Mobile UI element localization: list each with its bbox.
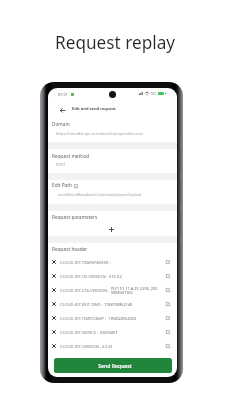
staticText: Request replay: [55, 31, 176, 54]
staticText: 55059457: [100, 330, 118, 335]
staticText: CLOUD-KIT-OS-VERSION :: [60, 274, 108, 279]
button[interactable]: CLOUD-KIT-NONCE :: [48, 325, 177, 339]
staticText: Edit and send request: [72, 106, 116, 112]
staticText: V15.0.2: [109, 274, 123, 279]
staticText: Request method: [52, 153, 89, 159]
button[interactable]: Back: [56, 104, 68, 116]
staticText: CLOUD-KIT-TRANSPARENT :: [60, 260, 112, 265]
staticText: 2.5.61: [102, 344, 113, 349]
staticText: 1768322654323: [108, 316, 137, 321]
staticText: CLOUD-KIT-INIT-TIME :: [60, 302, 103, 307]
button[interactable]: CLOUD-KIT-TRANSPARENT :: [48, 255, 177, 269]
button[interactable]: CLOUD-KIT-CTA-VERSION :: [48, 283, 177, 297]
staticText: Domain: [52, 121, 70, 127]
staticText: CLOUD-KIT-VERSION :: [60, 344, 101, 349]
staticText: Send Request: [98, 362, 132, 369]
staticText: POST: [56, 162, 175, 167]
button[interactable]: CLOUD-KIT-OS-VERSION :: [48, 269, 177, 283]
staticText: 5G: [151, 91, 156, 96]
staticText: 1768100852140: [104, 302, 133, 307]
staticText: Edit Path: [52, 182, 72, 188]
staticText: CLOUD-KIT-TIMESTAMP :: [60, 316, 107, 321]
button[interactable]: CLOUD-KIT-VERSION :: [48, 339, 177, 353]
button[interactable]: Add parameter: [105, 223, 118, 236]
staticText: ocs/albumMetadata/v1/private/prepareUplo…: [58, 192, 177, 197]
staticText: PLF110_11.A.25_0250_202 5898341760: [111, 286, 158, 295]
button[interactable]: Send Request: [54, 358, 172, 373]
staticText: 01:17: [58, 92, 67, 97]
button[interactable]: Edit path: [73, 183, 78, 188]
staticText: Request parameters: [52, 214, 98, 220]
button[interactable]: CLOUD-KIT-INIT-TIME :: [48, 297, 177, 311]
staticText: CLOUD-KIT-NONCE :: [60, 330, 99, 335]
button[interactable]: CLOUD-KIT-TIMESTAMP :: [48, 311, 177, 325]
staticText: Request header: [52, 246, 88, 252]
staticText: https://cloudkit-api-cn.instsvd.heytapmo…: [56, 131, 175, 136]
staticText: CLOUD-KIT-CTA-VERSION :: [60, 288, 110, 293]
